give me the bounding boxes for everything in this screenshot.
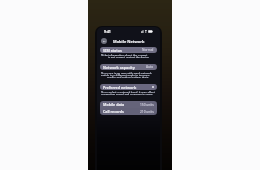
staticText: is not correct, restart the device. bbox=[108, 56, 150, 58]
button[interactable]: Back bbox=[101, 38, 107, 44]
staticText: Preferred network bbox=[103, 85, 137, 90]
staticText: Call records bbox=[103, 109, 124, 114]
staticText: 150 units bbox=[140, 103, 154, 107]
staticText: 210 units bbox=[140, 110, 154, 114]
button[interactable]: SIM status bbox=[100, 47, 157, 53]
button[interactable]: Network capacity bbox=[100, 64, 157, 70]
button[interactable]: Preferred network bbox=[100, 84, 157, 90]
staticText: If the information about the current net… bbox=[101, 54, 156, 56]
staticText: SIM status bbox=[103, 48, 122, 53]
staticText: If you select a network band, it may aff… bbox=[101, 91, 156, 93]
staticText: quality and reduce battery drain. bbox=[107, 76, 150, 78]
staticText: Mobile Network bbox=[113, 39, 145, 44]
staticText: 9:41 bbox=[104, 29, 111, 34]
staticText: Normal bbox=[142, 48, 154, 52]
staticText: Auto bbox=[146, 65, 154, 69]
button[interactable]: Call records bbox=[100, 108, 157, 115]
staticText: Mobile data bbox=[103, 102, 125, 107]
staticText: switch to a different mode to improve ne… bbox=[101, 74, 156, 76]
staticText: If you are in an area with weak network … bbox=[101, 72, 156, 74]
staticText: connection speed and coverage in some pl… bbox=[101, 93, 156, 95]
button[interactable]: Mobile data bbox=[100, 101, 157, 108]
staticText: Network capacity bbox=[103, 65, 135, 70]
